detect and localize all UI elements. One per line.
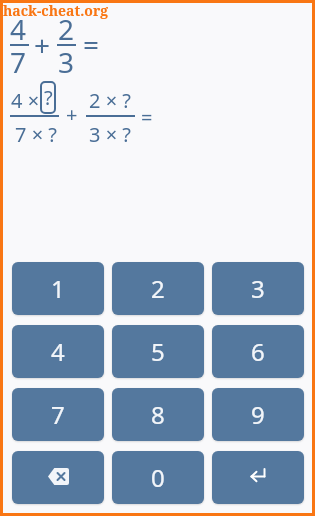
- staticText: 0: [151, 461, 165, 494]
- button[interactable]: 1: [12, 262, 104, 315]
- staticText: 1: [51, 272, 65, 305]
- staticText: 4: [10, 10, 27, 48]
- staticText: ?: [44, 84, 53, 111]
- staticText: =: [141, 104, 153, 131]
- staticText: 3: [58, 43, 75, 81]
- button[interactable]: 7: [12, 388, 104, 441]
- staticText: 4 ×: [11, 87, 40, 114]
- button[interactable]: 9: [212, 388, 304, 441]
- staticText: 7: [10, 43, 27, 81]
- button[interactable]: 5: [112, 325, 204, 378]
- button[interactable]: 6: [212, 325, 304, 378]
- button[interactable]: 8: [112, 388, 204, 441]
- staticText: 9: [251, 398, 265, 431]
- staticText: 7 × ?: [15, 121, 57, 148]
- button[interactable]: 0: [112, 451, 204, 504]
- staticText: 7: [51, 398, 65, 431]
- staticText: 2: [58, 10, 75, 48]
- button[interactable]: 2: [112, 262, 204, 315]
- staticText: +: [66, 101, 78, 128]
- staticText: +: [34, 26, 51, 64]
- button[interactable]: 4: [12, 325, 104, 378]
- button[interactable]: 3: [212, 262, 304, 315]
- staticText: 2: [151, 272, 165, 305]
- staticText: 8: [151, 398, 165, 431]
- staticText: 3 × ?: [89, 121, 131, 148]
- staticText: 5: [151, 335, 165, 368]
- staticText: hack-cheat.org: [3, 1, 109, 20]
- staticText: 6: [251, 335, 265, 368]
- button[interactable]: [212, 451, 304, 504]
- staticText: 2 × ?: [89, 87, 131, 114]
- button[interactable]: [12, 451, 104, 504]
- staticText: 3: [251, 272, 265, 305]
- staticText: =: [83, 25, 100, 63]
- staticText: 4: [51, 335, 65, 368]
